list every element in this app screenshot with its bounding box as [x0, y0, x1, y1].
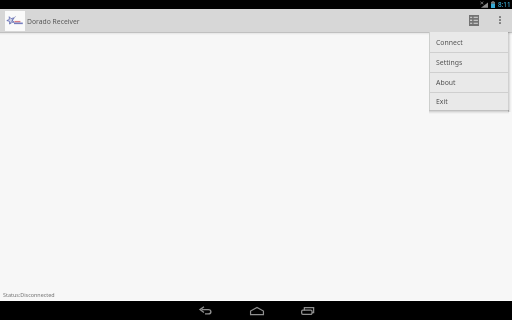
button[interactable]: Dorado Receiver: [0, 9, 83, 33]
staticText: Connect: [436, 38, 463, 47]
staticText: Status:Disconnected: [3, 291, 55, 298]
button[interactable]: Exit: [429, 92, 508, 110]
staticText: Exit: [436, 97, 448, 106]
button[interactable]: Recent apps: [282, 301, 333, 320]
button[interactable]: Back: [180, 301, 231, 320]
button[interactable]: Connect: [429, 32, 508, 52]
staticText: 8:11: [498, 0, 511, 9]
button[interactable]: About: [429, 72, 508, 92]
staticText: Dorado Receiver: [27, 17, 80, 26]
button[interactable]: Settings: [429, 52, 508, 72]
button[interactable]: More options: [488, 9, 512, 33]
button[interactable]: Device list: [464, 9, 488, 33]
staticText: About: [436, 78, 456, 87]
staticText: Settings: [436, 58, 463, 67]
button[interactable]: Home: [231, 301, 282, 320]
